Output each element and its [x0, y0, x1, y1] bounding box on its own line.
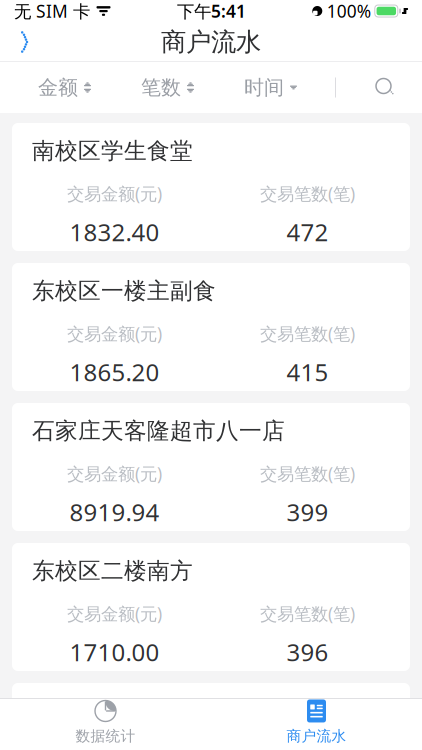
button[interactable]: 商户流水: [211, 692, 422, 750]
staticText: 下午5:41: [177, 0, 246, 22]
staticText: 时间: [244, 75, 284, 100]
staticText: 交易笔数(笔): [260, 462, 355, 485]
button[interactable]: 数据统计: [0, 692, 211, 750]
staticText: 商户流水: [286, 727, 346, 745]
staticText: 东校区二楼回民: [32, 697, 193, 725]
staticText: 交易金额(元): [67, 742, 162, 750]
staticText: 笔数: [141, 75, 181, 100]
button[interactable]: 石家庄天客隆超市八一店: [12, 403, 410, 531]
staticText: 东校区二楼南方: [32, 557, 193, 585]
staticText: 交易金额(元): [67, 602, 162, 625]
button[interactable]: 时间: [232, 62, 309, 113]
staticText: 1865.20: [69, 356, 159, 388]
button[interactable]: 金额: [26, 62, 103, 113]
staticText: 交易笔数(笔): [260, 182, 355, 205]
staticText: 396: [286, 636, 328, 668]
staticText: 交易笔数(笔): [260, 322, 355, 345]
staticText: 472: [286, 216, 328, 248]
button[interactable]: 返回: [0, 22, 42, 62]
staticText: 415: [286, 356, 328, 388]
staticText: 399: [286, 496, 328, 528]
staticText: 交易笔数(笔): [260, 602, 355, 625]
button[interactable]: 搜索: [362, 65, 408, 109]
staticText: 南校区学生食堂: [32, 137, 193, 165]
button[interactable]: 东校区二楼南方: [12, 543, 410, 671]
button[interactable]: 东校区二楼回民: [12, 683, 410, 750]
staticText: 交易金额(元): [67, 182, 162, 205]
staticText: 无 SIM 卡: [14, 0, 90, 22]
staticText: 金额: [38, 75, 78, 100]
staticText: 石家庄天客隆超市八一店: [32, 417, 285, 445]
staticText: 东校区一楼主副食: [32, 277, 216, 305]
button[interactable]: 南校区学生食堂: [12, 123, 410, 251]
staticText: 1832.40: [69, 216, 159, 248]
staticText: 8919.94: [69, 496, 159, 528]
staticText: 100%: [327, 0, 371, 22]
staticText: 交易金额(元): [67, 462, 162, 485]
staticText: 1710.00: [69, 636, 159, 668]
button[interactable]: 东校区一楼主副食: [12, 263, 410, 391]
staticText: 交易笔数(笔): [260, 742, 355, 750]
staticText: 交易金额(元): [67, 322, 162, 345]
button[interactable]: 笔数: [129, 62, 206, 113]
staticText: 数据统计: [75, 727, 135, 745]
staticText: 商户流水: [161, 26, 261, 57]
